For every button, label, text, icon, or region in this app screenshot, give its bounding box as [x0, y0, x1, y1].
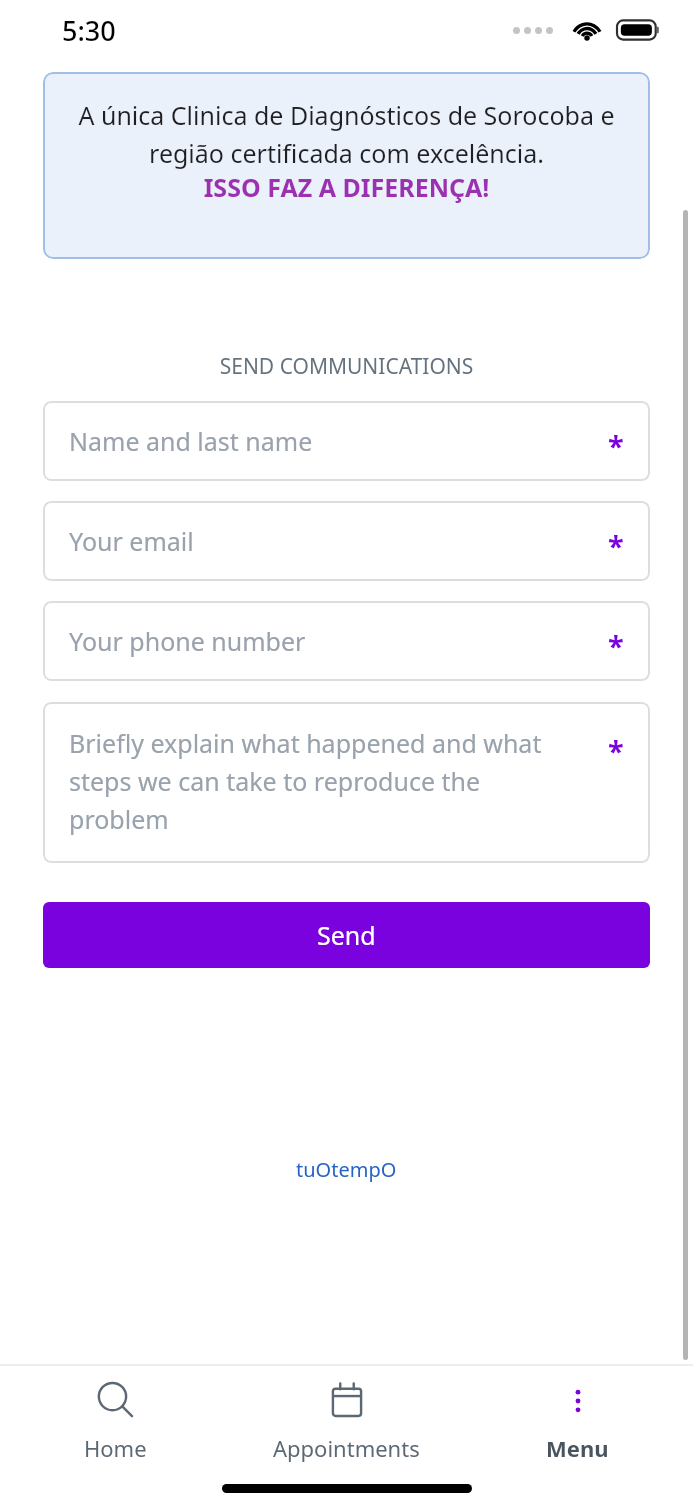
button[interactable]: Appointments: [231, 1371, 462, 1471]
staticText: A única Clinica de Diagnósticos de Soroc…: [53, 98, 640, 170]
other: Appointments: [325, 1379, 369, 1423]
staticText: Briefly explain what happened and what s…: [69, 726, 581, 836]
button[interactable]: Send: [43, 902, 650, 968]
button[interactable]: Name and last name: [43, 401, 650, 481]
staticText: *: [608, 526, 624, 565]
button[interactable]: A única Clinica de Diagnósticos de Soroc…: [43, 72, 650, 259]
staticText: 5:30: [62, 12, 116, 49]
staticText: ISSO FAZ A DIFERENÇA!: [53, 170, 640, 204]
button[interactable]: Your email: [43, 501, 650, 581]
staticText: *: [608, 626, 624, 665]
other: Menu: [556, 1379, 600, 1423]
staticText: *: [608, 731, 624, 770]
staticText: Send: [317, 918, 376, 952]
other: Home search: [94, 1379, 138, 1423]
staticText: *: [608, 426, 624, 465]
button[interactable]: Home search: [0, 1371, 231, 1471]
button[interactable]: Briefly explain what happened and what s…: [43, 702, 650, 863]
button[interactable]: tuOtempO: [296, 1156, 397, 1183]
staticText: SEND COMMUNICATIONS: [43, 352, 650, 381]
staticText: Name and last name: [69, 424, 313, 458]
staticText: Home: [84, 1433, 147, 1463]
button[interactable]: Your phone number: [43, 601, 650, 681]
staticText: Menu: [546, 1433, 609, 1463]
staticText: Appointments: [273, 1433, 420, 1463]
button[interactable]: Menu: [462, 1371, 693, 1471]
staticText: Your email: [69, 524, 194, 558]
staticText: Your phone number: [69, 624, 306, 658]
